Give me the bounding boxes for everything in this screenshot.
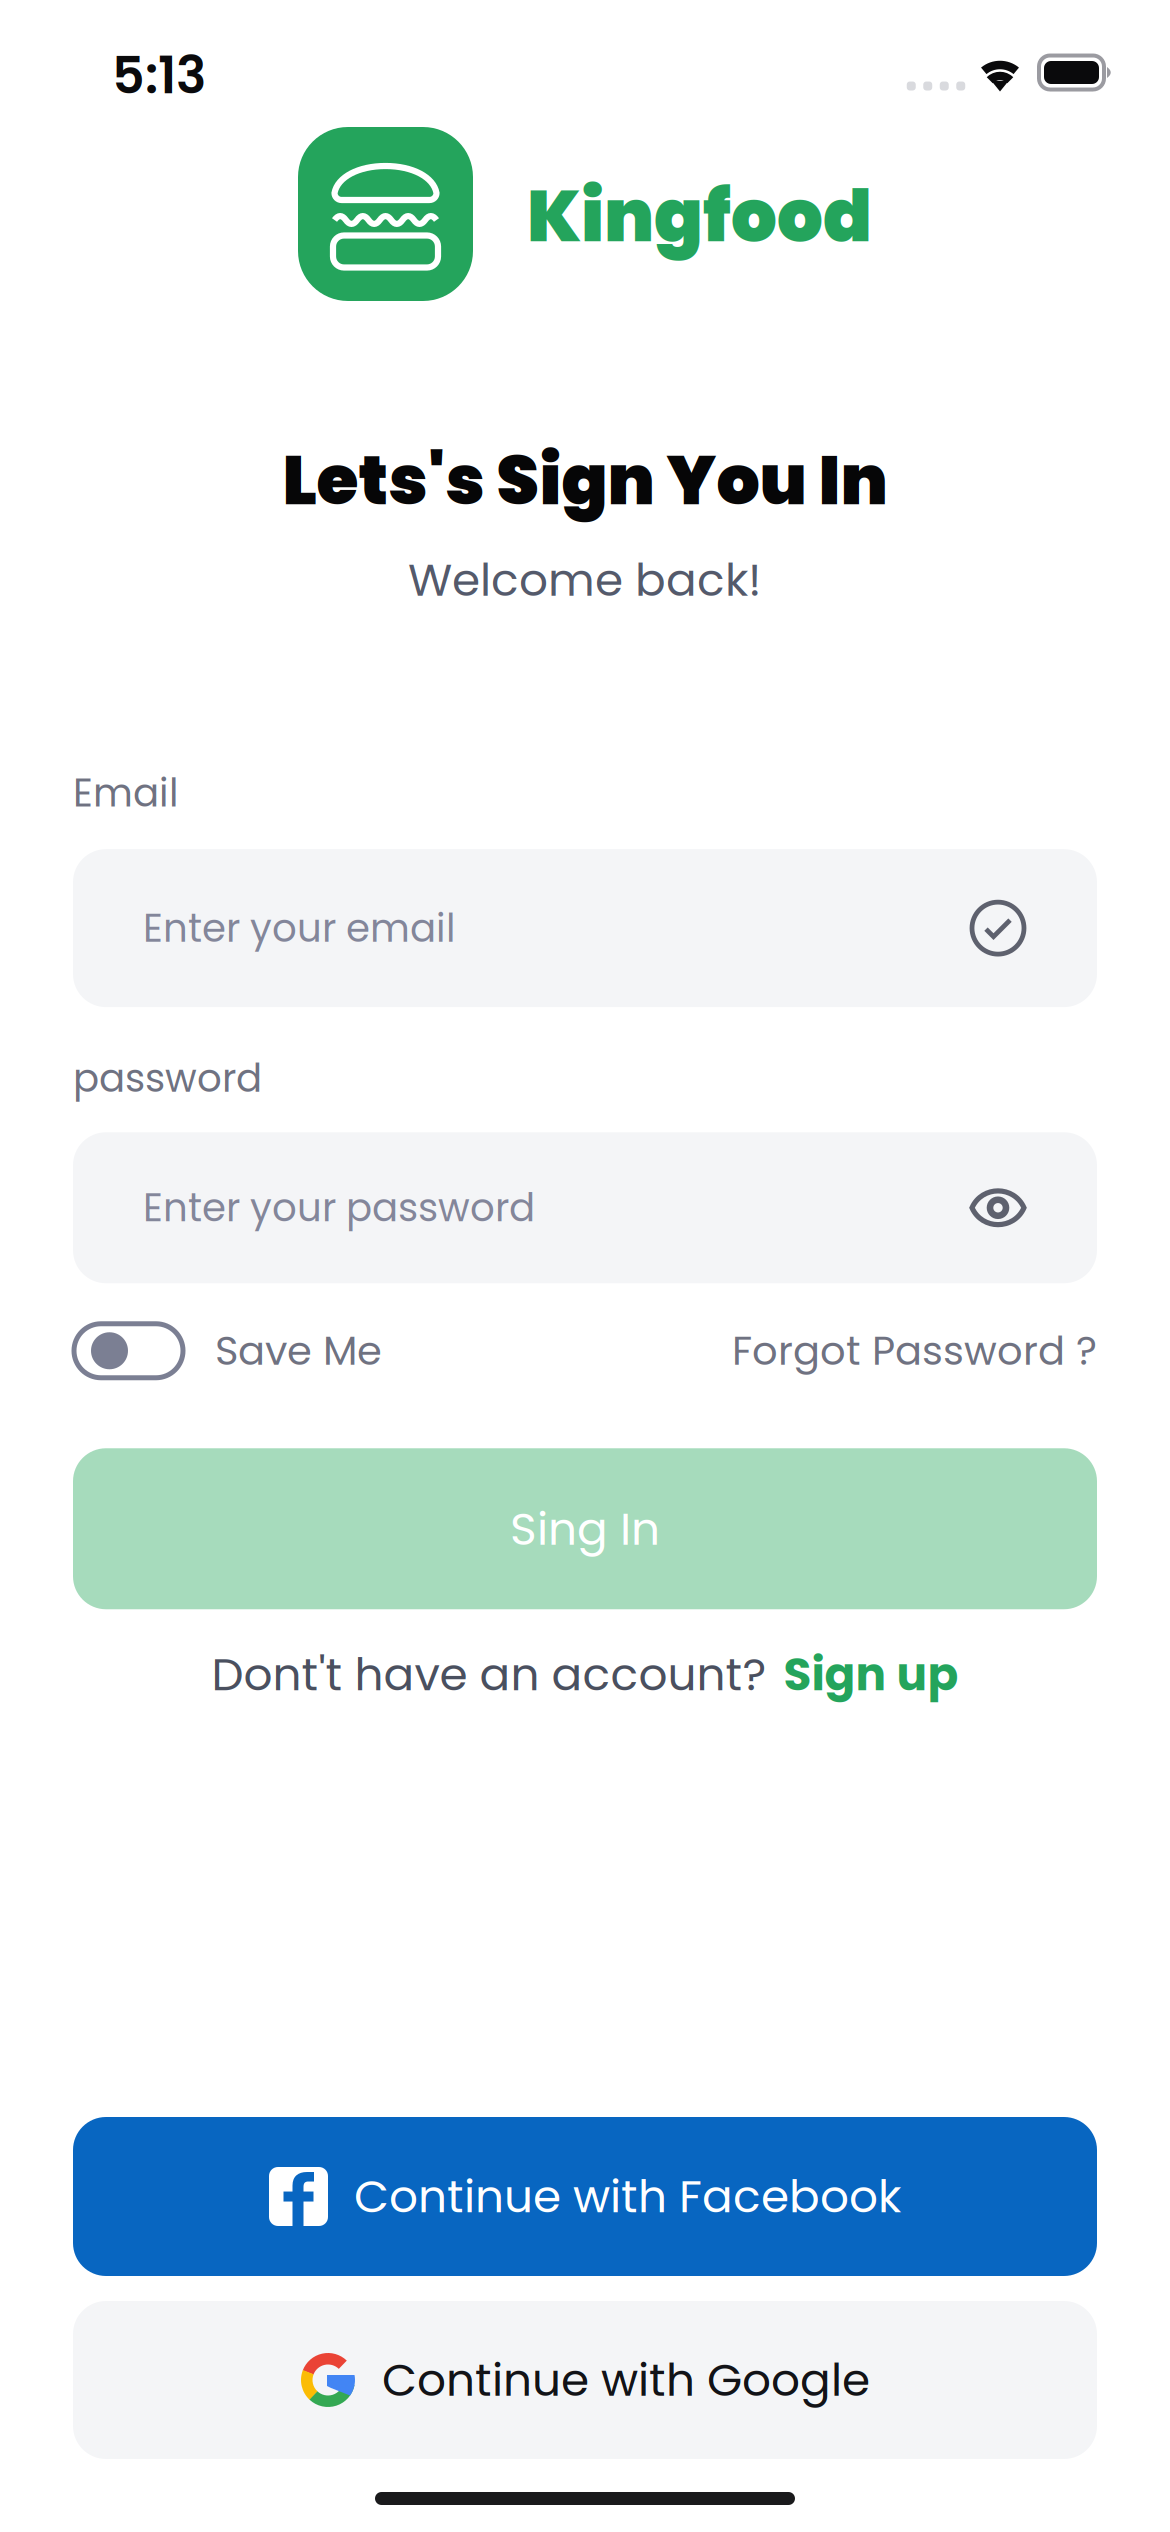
staticText: Sign up xyxy=(783,1642,958,1706)
staticText: 5:13 xyxy=(112,40,206,111)
button[interactable]: Forgot Password ? xyxy=(732,1321,1097,1380)
button[interactable]: Continue with Google xyxy=(73,2301,1097,2459)
staticText: Enter your password xyxy=(143,1181,535,1235)
staticText: Enter your email xyxy=(143,901,456,955)
staticText: Continue with Google xyxy=(382,2348,870,2412)
button[interactable]: Save Me xyxy=(73,1321,382,1380)
staticText: Sing In xyxy=(510,1497,660,1560)
staticText: Continue with Facebook xyxy=(354,2165,901,2228)
staticText: Kingfood xyxy=(527,166,872,266)
button[interactable]: Sing In xyxy=(73,1448,1097,1609)
staticText: Forgot Password ? xyxy=(732,1323,1097,1379)
staticText: password xyxy=(73,1051,262,1105)
staticText: Welcome back! xyxy=(408,548,762,612)
button[interactable]: Dont't have an account? xyxy=(73,1642,1097,1706)
staticText: Lets's Sign You In xyxy=(282,433,887,528)
staticText: Dont't have an account? xyxy=(211,1642,766,1706)
staticText: Email xyxy=(73,766,179,820)
staticText: Save Me xyxy=(215,1323,382,1379)
button[interactable]: Continue with Facebook xyxy=(73,2117,1097,2276)
